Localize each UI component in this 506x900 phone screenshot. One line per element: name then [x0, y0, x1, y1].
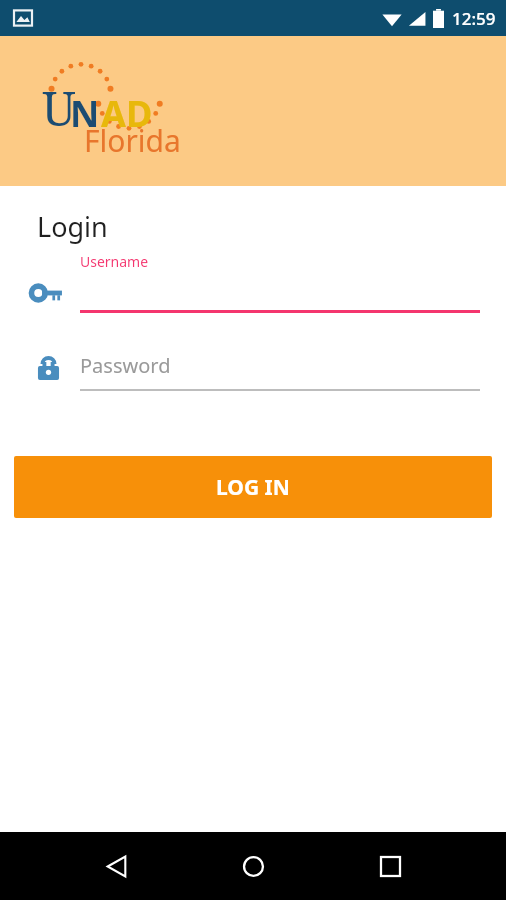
staticText: 12:59 — [452, 7, 496, 30]
staticText: Florida — [84, 120, 181, 161]
staticText: Username — [80, 252, 149, 271]
other: Username — [30, 277, 62, 309]
staticText: N — [70, 89, 100, 138]
staticText: AD — [101, 89, 153, 138]
button[interactable]: Home — [229, 842, 277, 890]
staticText: Password — [80, 352, 171, 379]
staticText: U — [42, 76, 76, 140]
staticText: LOG IN — [216, 473, 290, 502]
other: Password — [33, 353, 64, 384]
button[interactable]: Username — [0, 251, 506, 323]
staticText: Login — [37, 208, 108, 245]
button[interactable]: Password — [0, 349, 506, 403]
button[interactable]: Recent apps — [366, 842, 414, 890]
button[interactable]: LOG IN — [14, 456, 492, 518]
button[interactable]: Back — [92, 842, 140, 890]
